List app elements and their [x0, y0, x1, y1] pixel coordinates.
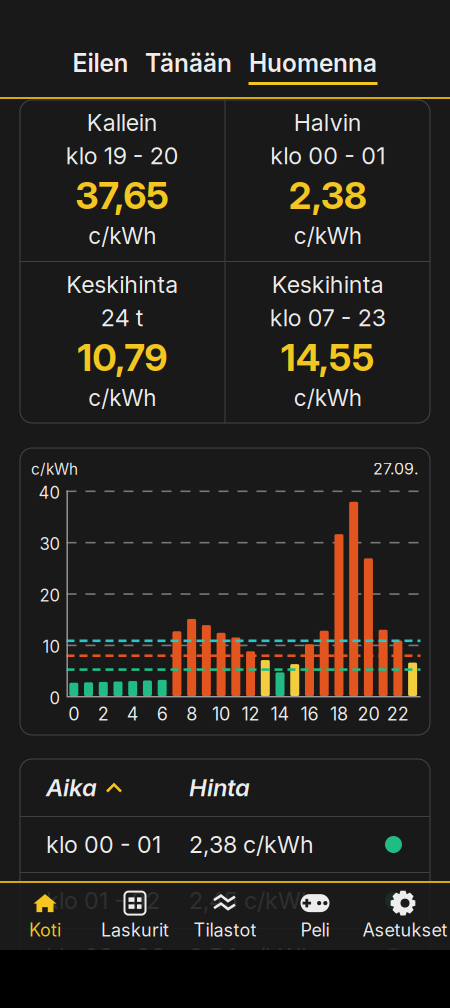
button[interactable]: Tilastot	[180, 882, 270, 951]
button[interactable]: klo 02 - 03	[20, 929, 430, 984]
staticText: Keskihinta	[272, 270, 384, 299]
staticText: 0	[68, 703, 79, 725]
staticText: 12	[242, 703, 260, 725]
staticText: c/kWh	[294, 384, 362, 411]
staticText: 37,65	[75, 173, 169, 218]
staticText: 24 t	[101, 304, 144, 332]
staticText: Kallein	[87, 108, 158, 137]
staticText: Eilen	[72, 48, 128, 78]
button[interactable]: Peli	[270, 882, 360, 951]
staticText: c/kWh	[31, 460, 78, 479]
staticText: c/kWh	[88, 222, 156, 249]
staticText: 20	[357, 703, 379, 725]
staticText: 4	[127, 703, 139, 725]
button[interactable]: Huomenna	[248, 48, 377, 97]
staticText: 27.09.	[373, 459, 419, 478]
staticText: 10	[42, 637, 60, 657]
staticText: 2,38	[289, 173, 367, 218]
staticText: klo 00 - 01	[270, 142, 385, 170]
staticText: 16	[300, 703, 318, 725]
staticText: Koti	[29, 919, 61, 941]
button[interactable]: Asetukset	[360, 882, 450, 951]
staticText: Peli	[300, 919, 329, 941]
staticText: Hinta	[189, 773, 250, 802]
staticText: Tilastot	[193, 919, 256, 941]
staticText: Huomenna	[249, 48, 377, 78]
staticText: klo 00 - 01	[46, 830, 161, 859]
button[interactable]: klo 00 - 01	[20, 817, 430, 872]
staticText: Laskurit	[101, 919, 169, 941]
button[interactable]: Eilen	[72, 48, 128, 97]
staticText: 2,45 c/kWh	[189, 886, 315, 915]
staticText: Tänään	[145, 48, 232, 78]
staticText: c/kWh	[88, 384, 156, 411]
staticText: klo 07 - 23	[270, 304, 386, 332]
staticText: 22	[387, 703, 409, 725]
staticText: c/kWh	[294, 222, 362, 249]
staticText: 14	[270, 703, 289, 725]
staticText: Halvin	[294, 108, 362, 137]
button[interactable]: Koti	[0, 882, 90, 951]
staticText: 20	[39, 585, 60, 605]
staticText: 10	[212, 703, 230, 725]
staticText: 18	[330, 703, 348, 725]
staticText: 40	[38, 482, 60, 503]
staticText: 2,38 c/kWh	[189, 830, 314, 859]
button[interactable]: Laskurit	[90, 882, 180, 951]
staticText: 8	[186, 703, 197, 725]
staticText: klo 02 - 03	[46, 942, 165, 971]
staticText: Keskihinta	[66, 270, 178, 299]
staticText: Asetukset	[362, 919, 447, 941]
staticText: 6	[157, 703, 168, 725]
staticText: 2	[98, 703, 109, 725]
staticText: klo 01 - 02	[46, 886, 160, 915]
staticText: 2,54 c/kWh	[189, 942, 315, 971]
staticText: 30	[39, 534, 60, 554]
button[interactable]: klo 01 - 02	[20, 873, 430, 928]
button[interactable]: Tänään	[146, 48, 230, 97]
staticText: 0	[49, 688, 60, 708]
staticText: Aika	[46, 773, 97, 802]
staticText: 10,79	[77, 335, 167, 380]
staticText: klo 19 - 20	[66, 142, 179, 170]
staticText: 14,55	[281, 335, 375, 380]
button[interactable]: Aika	[20, 759, 430, 816]
